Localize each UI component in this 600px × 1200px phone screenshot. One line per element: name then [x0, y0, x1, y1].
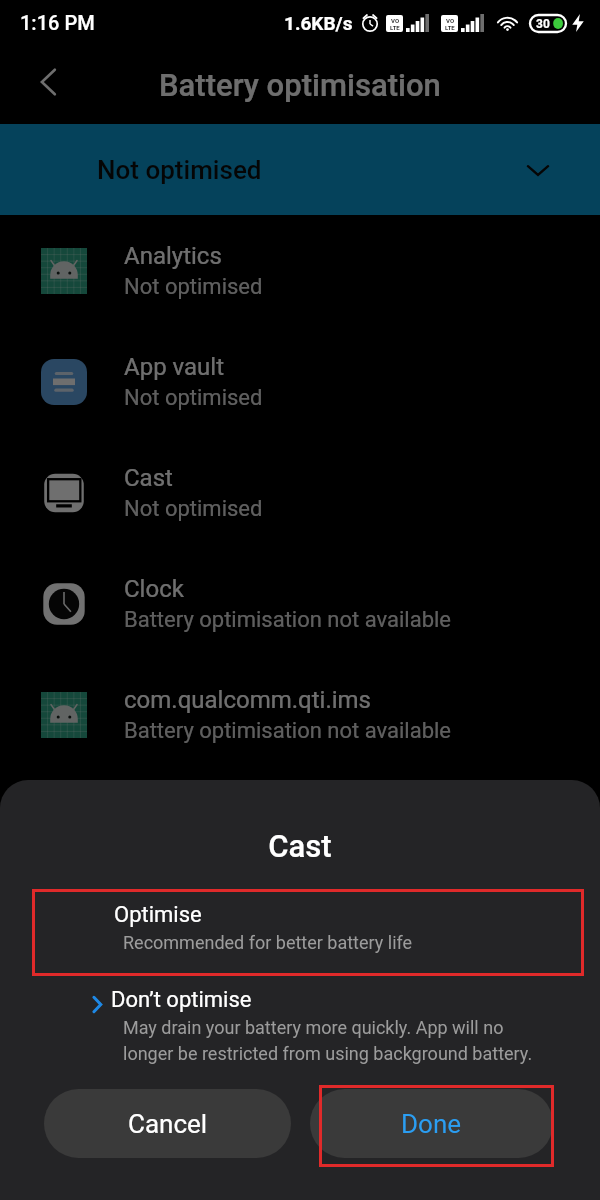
button[interactable]: Analytics — [0, 215, 600, 326]
staticText: May drain your battery more quickly. App… — [123, 1017, 533, 1064]
button[interactable]: Optimise — [32, 889, 584, 976]
staticText: Not optimised — [97, 155, 262, 185]
staticText: Cast — [124, 464, 173, 492]
staticText: Battery optimisation — [159, 67, 441, 103]
staticText: 1.6KB/s — [284, 12, 353, 34]
button[interactable]: Cast — [0, 437, 600, 548]
staticText: VO — [446, 17, 455, 24]
staticText: 1:16 PM — [20, 11, 95, 34]
button[interactable]: App vault — [0, 326, 600, 437]
button[interactable]: Back — [24, 61, 72, 109]
staticText: Clock — [124, 575, 184, 603]
button[interactable]: Not optimised — [0, 124, 600, 215]
staticText: Not optimised — [124, 496, 263, 522]
staticText: LTE — [445, 24, 455, 31]
staticText: Optimise — [114, 902, 202, 928]
button[interactable]: Clock — [0, 548, 600, 659]
staticText: Don’t optimise — [111, 987, 252, 1013]
button[interactable]: Done — [310, 1089, 553, 1158]
staticText: VO — [391, 17, 400, 24]
staticText: App vault — [124, 353, 224, 381]
staticText: Analytics — [124, 242, 222, 270]
staticText: Battery optimisation not available — [124, 718, 452, 744]
button[interactable]: com.qualcomm.qti.ims — [0, 659, 600, 770]
staticText: Cancel — [128, 1109, 208, 1139]
staticText: Battery optimisation not available — [124, 607, 452, 633]
button[interactable]: Cancel — [44, 1089, 291, 1158]
staticText: Not optimised — [124, 274, 263, 300]
staticText: Cast — [0, 828, 600, 864]
staticText: Not optimised — [124, 385, 263, 411]
staticText: Recommended for better battery life — [123, 932, 413, 953]
staticText: 30 — [536, 17, 550, 31]
button[interactable]: Don’t optimise — [0, 987, 600, 1073]
staticText: Done — [401, 1109, 462, 1139]
staticText: LTE — [390, 24, 400, 31]
staticText: com.qualcomm.qti.ims — [124, 686, 371, 714]
